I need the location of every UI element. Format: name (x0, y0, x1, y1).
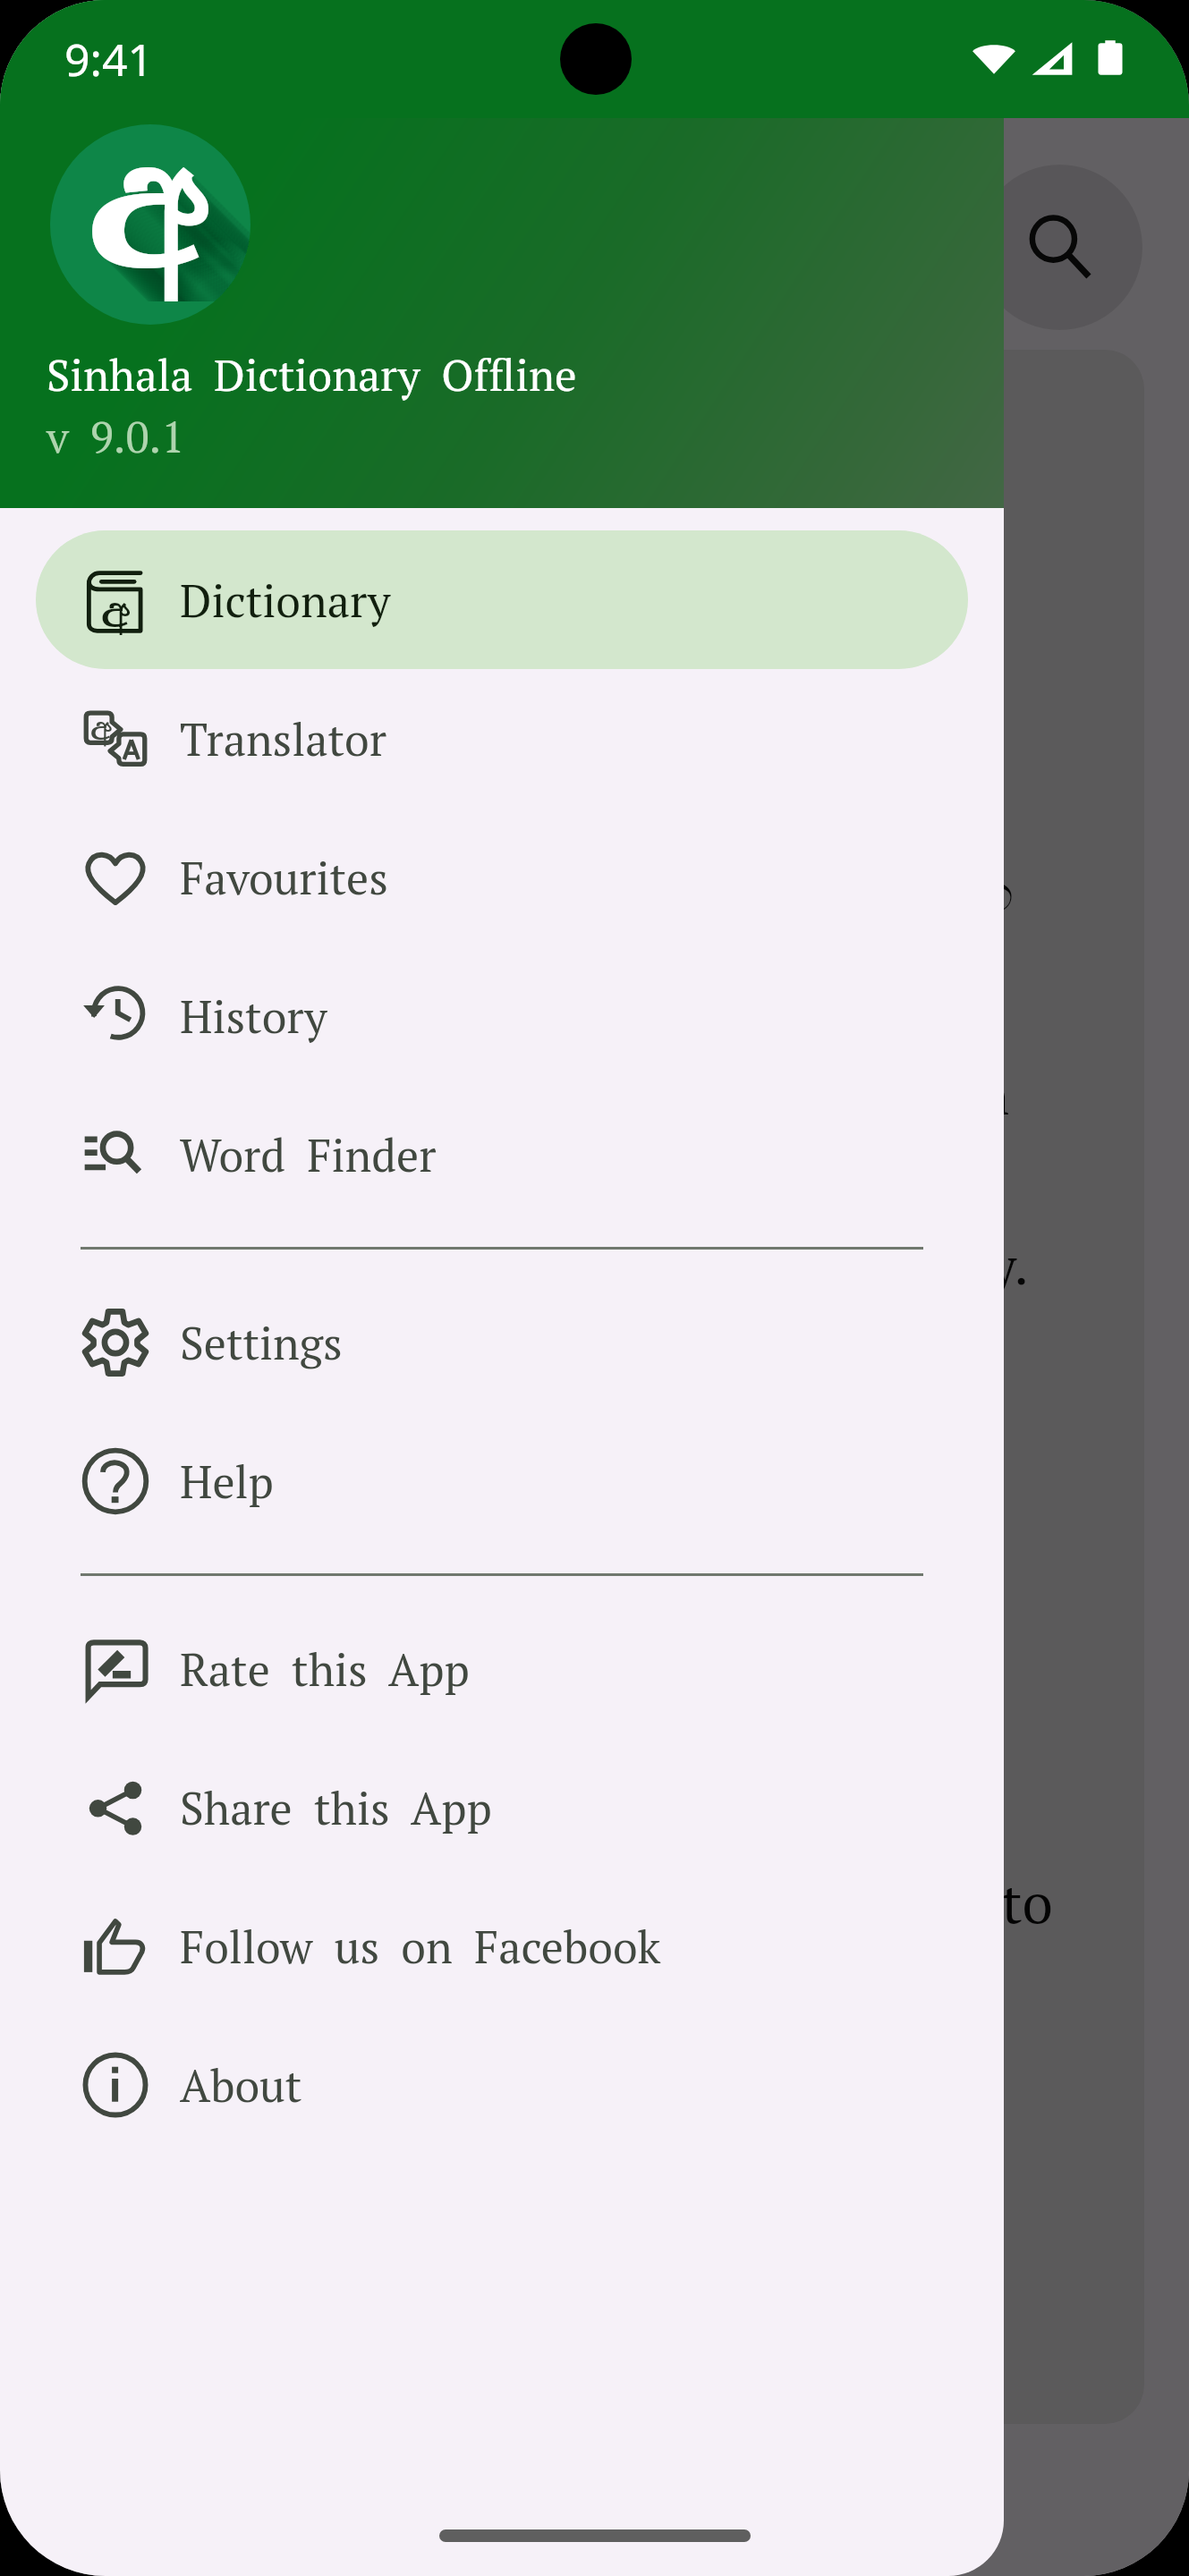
staticText: Word Finder (180, 1125, 437, 1184)
staticText: අ (93, 124, 217, 301)
button[interactable]: Settings (36, 1273, 968, 1411)
staticText: 2. අකැමැත්ත, අප්‍රසාදය; විරසකභාවය; to (66, 1866, 1053, 1939)
staticText: අ (152, 165, 251, 301)
staticText: something or someone is disliked fully. (66, 1231, 1029, 1300)
staticText: අ (147, 160, 251, 301)
staticText: Favourites (180, 848, 388, 907)
staticText: අ (96, 124, 220, 301)
staticText: අ (98, 124, 223, 301)
staticText: අ (133, 147, 251, 301)
staticText: v 9.0.1 (47, 407, 185, 465)
staticText: අ (123, 136, 247, 301)
staticText: Dictionary (180, 571, 391, 630)
staticText: History (180, 987, 327, 1046)
staticText: අ (117, 131, 242, 301)
staticText: අ (109, 124, 234, 301)
button[interactable]: Word Finder (36, 1085, 968, 1224)
staticText: අ (101, 124, 225, 301)
staticText: අ (157, 171, 251, 301)
staticText: be unwilling about it; something that on… (66, 1973, 991, 2258)
staticText: අ (131, 144, 251, 301)
staticText: අ (90, 709, 113, 749)
staticText: Rate this App (180, 1640, 470, 1699)
button[interactable]: Share this App (36, 1738, 968, 1877)
button[interactable]: History (36, 946, 968, 1085)
button[interactable]: Favourites (36, 808, 968, 946)
button[interactable]: Search (977, 165, 1142, 330)
staticText: 1. අකමැති බව; නොකැමැත්ත; අකැප ඉ (66, 855, 1015, 928)
staticText: Follow us on Facebook (180, 1917, 661, 1976)
staticText: අ (101, 586, 132, 635)
staticText: Settings (180, 1313, 343, 1372)
staticText: අ (90, 124, 215, 301)
staticText: Share this App (180, 1778, 492, 1837)
staticText: අ (139, 152, 251, 301)
button[interactable]: Follow us on Facebook (36, 1877, 968, 2015)
staticText: අ (128, 141, 251, 301)
staticText: 9:41 (64, 29, 154, 89)
staticText: Help (180, 1452, 274, 1511)
staticText: අ (120, 133, 244, 301)
staticText: අ (141, 155, 251, 301)
button[interactable]: About (36, 2015, 968, 2154)
staticText: අ (88, 124, 212, 301)
staticText: අකමැත්ත (66, 386, 320, 448)
staticText: අ (112, 125, 236, 301)
button[interactable]: Rate this App (36, 1599, 968, 1738)
staticText: Translator (180, 709, 386, 768)
staticText: unwillingness; dislike; a state of when (66, 1061, 1009, 1130)
staticText: අ (115, 128, 239, 301)
button[interactable]: Help (36, 1411, 968, 1550)
staticText: අ (149, 163, 251, 301)
staticText: අ (155, 168, 251, 301)
button[interactable]: අ (36, 669, 968, 808)
staticText: අ (104, 124, 228, 301)
staticText: Sinhala Dictionary Offline (47, 345, 577, 403)
staticText: අ (144, 157, 251, 301)
staticText: අ (125, 139, 250, 301)
staticText: අ (136, 149, 251, 301)
staticText: About (180, 2055, 302, 2114)
staticText: අ (106, 124, 231, 301)
button[interactable]: අ (36, 530, 968, 669)
